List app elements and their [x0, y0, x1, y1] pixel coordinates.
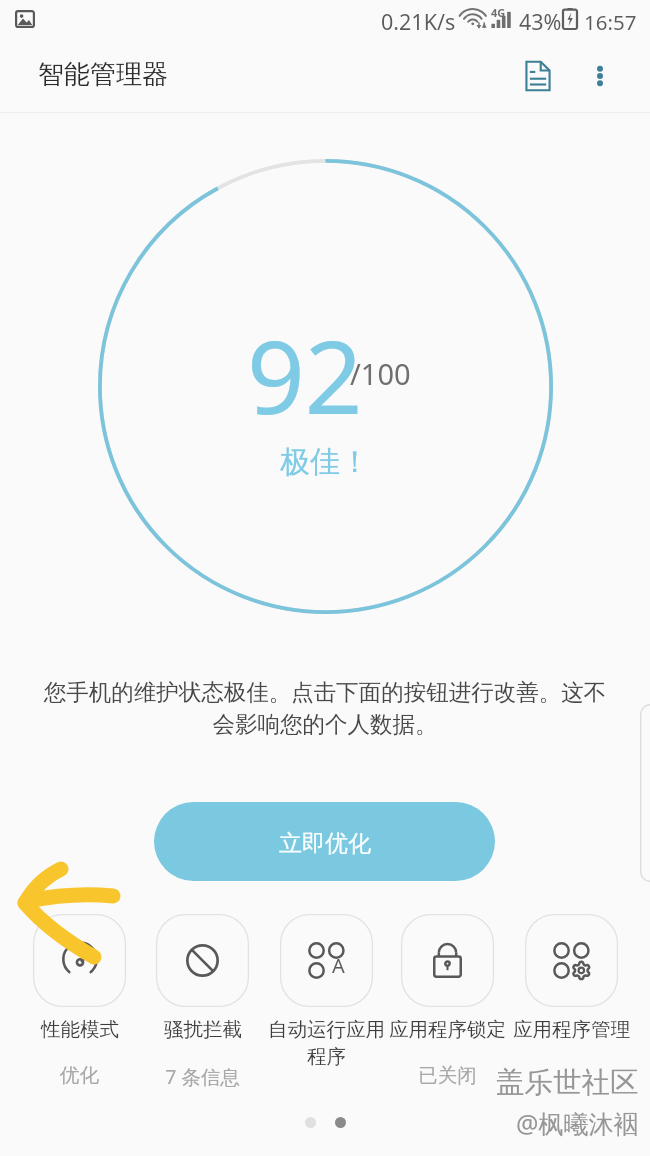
- staticText: 应用程序锁定: [389, 1017, 506, 1042]
- staticText: 盖乐世社区: [496, 1065, 639, 1101]
- button[interactable]: A: [262, 912, 390, 1092]
- button[interactable]: Report: [508, 46, 568, 106]
- staticText: 43%: [519, 7, 562, 36]
- staticText: 已关闭: [418, 1063, 477, 1088]
- staticText: 0.21K/s: [381, 7, 456, 36]
- staticText: 16:57: [584, 8, 637, 36]
- staticText: @枫曦沐裀: [516, 1106, 639, 1140]
- staticText: 92: [247, 306, 363, 444]
- staticText: 7 条信息: [165, 1063, 240, 1090]
- staticText: 立即优化: [279, 829, 371, 858]
- staticText: A: [332, 952, 345, 979]
- staticText: 性能模式: [41, 1017, 119, 1042]
- staticText: /100: [350, 354, 411, 393]
- staticText: 智能管理器: [38, 58, 168, 91]
- staticText: 您手机的维护状态极佳。点击下面的按钮进行改善。这不会影响您的个人数据。: [40, 678, 610, 739]
- staticText: 应用程序管理: [513, 1017, 630, 1042]
- staticText: 4G: [491, 5, 506, 20]
- staticText: 极佳！: [280, 443, 370, 481]
- button[interactable]: 性能模式: [15, 912, 143, 1092]
- button[interactable]: 骚扰拦截: [138, 912, 266, 1092]
- button[interactable]: More options: [570, 46, 630, 106]
- staticText: 骚扰拦截: [164, 1017, 242, 1042]
- button[interactable]: 立即优化: [154, 802, 495, 881]
- staticText: 自动运行应用 程序: [268, 1017, 385, 1069]
- button[interactable]: 应用程序管理: [507, 912, 635, 1092]
- button[interactable]: 应用程序锁定: [383, 912, 511, 1092]
- staticText: 优化: [60, 1063, 99, 1088]
